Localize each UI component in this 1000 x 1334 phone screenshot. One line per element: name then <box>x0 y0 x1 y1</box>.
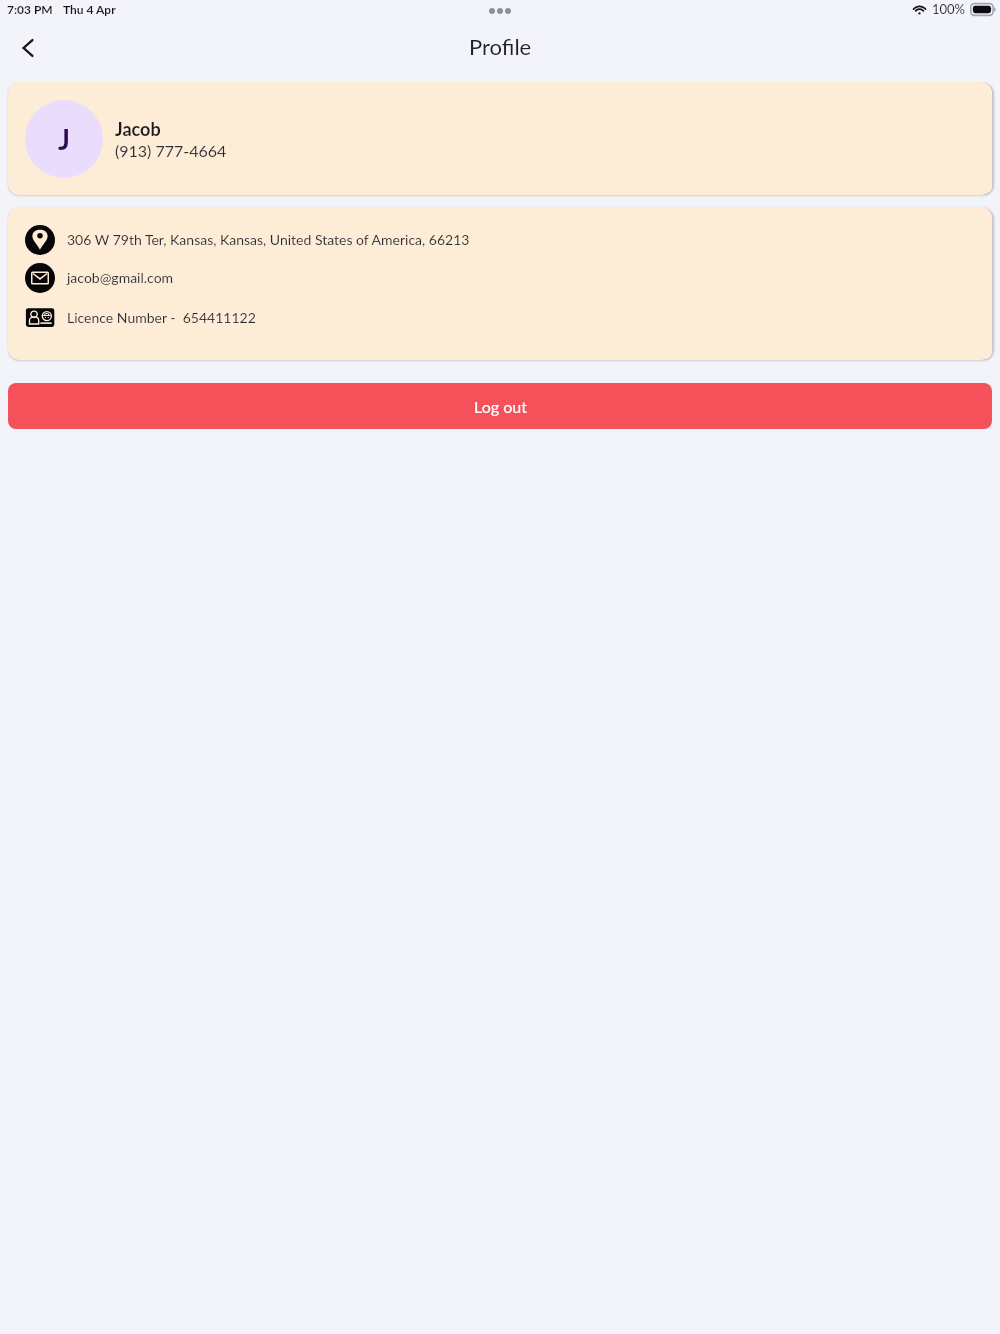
staticText: Log out <box>474 397 527 416</box>
button[interactable]: Log out <box>8 383 992 429</box>
staticText: 100% <box>932 1 966 17</box>
staticText: Jacob <box>115 118 161 140</box>
button[interactable]: Licence Number - 654411122 <box>25 302 256 333</box>
staticText: 7:03 PM <box>7 2 53 16</box>
staticText: Licence Number - 654411122 <box>67 309 256 326</box>
staticText: (913) 777-4664 <box>115 141 227 160</box>
staticText: jacob@gmail.com <box>67 269 174 286</box>
staticText: Profile <box>469 33 532 59</box>
staticText: Thu 4 Apr <box>63 2 116 16</box>
button[interactable]: Back <box>8 28 48 68</box>
button[interactable]: 306 W 79th Ter, Kansas, Kansas, United S… <box>25 224 470 255</box>
staticText: 306 W 79th Ter, Kansas, Kansas, United S… <box>67 231 470 248</box>
button[interactable]: J <box>8 82 992 195</box>
button[interactable]: jacob@gmail.com <box>25 262 174 293</box>
staticText: J <box>58 122 71 156</box>
